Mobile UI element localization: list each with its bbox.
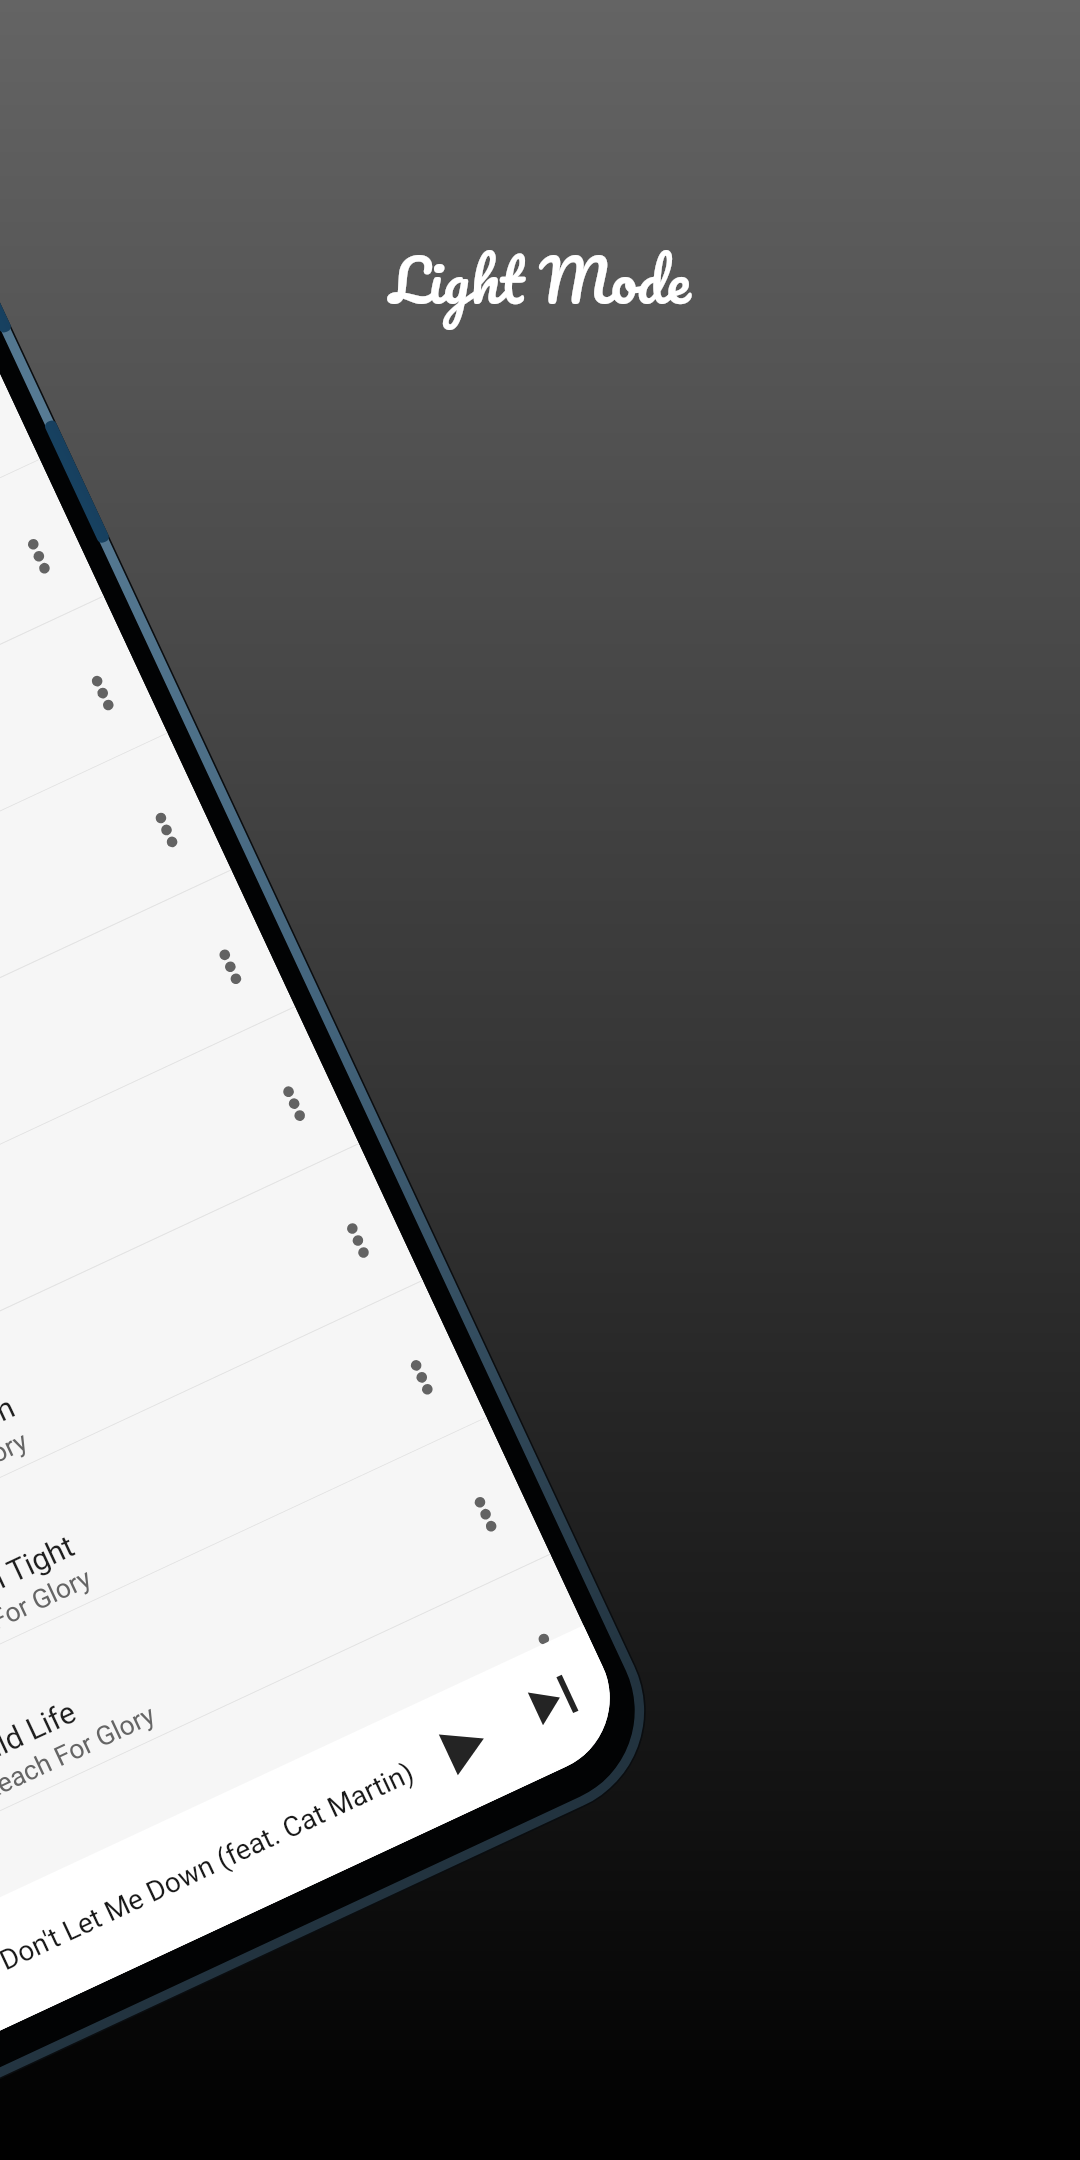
- button[interactable]: More options: [551, 1705, 627, 1766]
- button[interactable]: Golden Hour: [0, 323, 40, 823]
- staticText: Light Mode: [0, 228, 1080, 330]
- button[interactable]: More options: [442, 1470, 529, 1558]
- button[interactable]: More options: [186, 923, 274, 1011]
- button[interactable]: Electric Dream: [0, 596, 168, 1097]
- staticText: Reach For Glory: [0, 1562, 96, 1669]
- staticText: Don't Let Me Down (feat. Cat Martin): [0, 1756, 419, 1977]
- button[interactable]: More options: [505, 1607, 593, 1695]
- staticText: Give It Away: [24, 1810, 190, 1913]
- button[interactable]: More options: [0, 512, 83, 600]
- button[interactable]: More options: [123, 786, 210, 874]
- button[interactable]: More options: [59, 649, 146, 737]
- button[interactable]: More options: [0, 375, 19, 463]
- button[interactable]: Silver Lining: [0, 733, 232, 1234]
- button[interactable]: Don't Let Me Down: [0, 1691, 635, 2098]
- button[interactable]: Give It Away: [0, 1554, 614, 2055]
- staticText: Wild Life: [0, 1694, 82, 1776]
- staticText: Breathe Again: [0, 1389, 21, 1502]
- button[interactable]: Higher Ground: [0, 870, 295, 1370]
- staticText: Hold On Tight: [0, 1528, 80, 1639]
- button[interactable]: More options: [378, 1333, 466, 1421]
- button[interactable]: Hold On Tight: [0, 1281, 487, 1781]
- button[interactable]: Breathe Again: [0, 1144, 423, 1644]
- button[interactable]: Don't Let Me Down (feat. Cat Martin): [0, 1625, 635, 2098]
- button[interactable]: Play: [405, 1689, 522, 1806]
- staticText: Reach For Glory: [0, 1699, 160, 1806]
- button[interactable]: Skip to next: [496, 1641, 613, 1758]
- button[interactable]: More options: [314, 1197, 402, 1284]
- staticText: Reach For Glory: [40, 1835, 224, 1943]
- button[interactable]: Paper Planes: [0, 460, 104, 960]
- button[interactable]: More options: [250, 1060, 338, 1147]
- button[interactable]: Wild Life: [0, 1418, 551, 1918]
- button[interactable]: Night Drive: [0, 1007, 359, 1507]
- staticText: Reach For Glory: [0, 1425, 32, 1532]
